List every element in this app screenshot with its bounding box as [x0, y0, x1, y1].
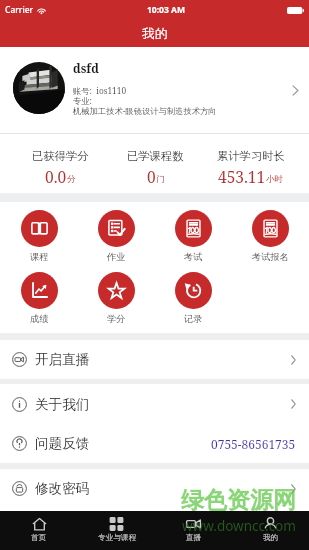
staticText: 绿色资源网 — [181, 486, 296, 515]
button[interactable]: 考试报名 — [232, 210, 309, 263]
staticText: 直播 — [186, 533, 202, 543]
staticText: Carrier — [5, 4, 34, 16]
staticText: 修改密码 — [35, 480, 90, 497]
staticText: 已获得学分 — [32, 149, 89, 163]
staticText: dsfd — [73, 60, 99, 76]
button[interactable]: 作业 — [78, 210, 155, 263]
button[interactable]: 记录 — [155, 272, 232, 325]
staticText: 问题反馈 — [35, 435, 90, 452]
staticText: 我的 — [142, 26, 168, 42]
staticText: 记录 — [184, 313, 203, 325]
staticText: 成绩 — [30, 313, 49, 325]
staticText: 已学课程数 — [127, 149, 184, 163]
button[interactable]: 开启直播 — [0, 340, 309, 379]
staticText: 首页 — [31, 533, 47, 543]
button[interactable]: 考试 — [155, 210, 232, 263]
staticText: 门 — [156, 174, 165, 185]
staticText: 分 — [67, 174, 76, 185]
staticText: 开启直播 — [35, 351, 90, 368]
staticText: 10:03 AM — [147, 4, 185, 16]
staticText: 课程 — [30, 251, 49, 263]
staticText: 学分 — [107, 313, 126, 325]
staticText: 作业 — [107, 251, 126, 263]
staticText: 453.11 — [218, 166, 266, 187]
staticText: 考试报名 — [252, 251, 289, 263]
staticText: 考试 — [184, 251, 203, 263]
staticText: 累计学习时长 — [217, 149, 285, 163]
staticText: 小时 — [266, 174, 284, 185]
staticText: 0.0 — [45, 166, 67, 187]
staticText: 账号: ios1110 专业: 机械加工技术-眼镜设计与制造技术方向 — [73, 85, 217, 116]
button[interactable]: 问题反馈 — [0, 424, 309, 463]
staticText: 0 — [147, 166, 156, 187]
button[interactable]: 成绩 — [0, 272, 78, 325]
button[interactable]: 修改密码 — [0, 469, 309, 508]
button[interactable]: dsfd — [0, 47, 309, 133]
staticText: 0755-86561735 — [211, 436, 296, 452]
button[interactable]: 我的 — [232, 511, 309, 550]
button[interactable]: 首页 — [0, 511, 78, 550]
staticText: 关于我们 — [35, 396, 90, 413]
button[interactable]: 关于我们 — [0, 384, 309, 424]
staticText: 专业与课程 — [98, 533, 136, 543]
button[interactable]: 学分 — [78, 272, 155, 325]
staticText: www.downcc.com — [182, 517, 296, 535]
button[interactable]: 专业与课程 — [78, 511, 155, 550]
button[interactable]: 直播 — [155, 511, 232, 550]
staticText: 我的 — [263, 533, 279, 543]
button[interactable]: 课程 — [0, 210, 78, 263]
